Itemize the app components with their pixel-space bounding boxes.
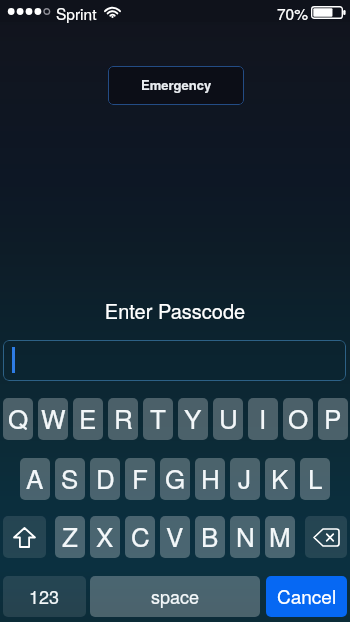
button[interactable]: Emergency (108, 66, 244, 105)
button[interactable]: K (265, 458, 295, 500)
staticText: Q (8, 399, 29, 436)
staticText: I (259, 399, 267, 436)
staticText: X (96, 517, 114, 554)
staticText: B (201, 517, 219, 554)
staticText: E (79, 399, 97, 436)
staticText: S (61, 459, 79, 496)
button[interactable]: S (55, 458, 85, 500)
staticText: V (166, 517, 184, 554)
staticText: 70% (277, 2, 309, 24)
staticText: U (219, 399, 238, 436)
staticText: R (114, 399, 133, 436)
staticText: A (26, 459, 44, 496)
staticText: N (236, 517, 255, 554)
button[interactable]: G (160, 458, 190, 500)
button[interactable]: J (230, 458, 260, 500)
staticText: K (271, 459, 289, 496)
staticText: Emergency (141, 75, 212, 94)
staticText: P (324, 399, 342, 436)
staticText: J (238, 459, 252, 496)
button[interactable]: Shift (3, 516, 46, 558)
button[interactable]: A (20, 458, 50, 500)
staticText: Z (62, 517, 78, 554)
staticText: Sprint (56, 2, 97, 24)
button[interactable] (3, 340, 346, 381)
staticText: O (288, 399, 309, 436)
button[interactable]: V (160, 516, 190, 558)
staticText: G (165, 459, 186, 496)
staticText: F (132, 459, 148, 496)
staticText: 123 (29, 583, 60, 609)
button[interactable]: L (300, 458, 330, 500)
staticText: L (308, 459, 323, 496)
staticText: Cancel (277, 582, 337, 609)
button[interactable]: space (90, 576, 260, 617)
button[interactable]: B (195, 516, 225, 558)
button[interactable]: R (108, 398, 138, 440)
button[interactable]: 123 (3, 576, 86, 617)
staticText: D (96, 459, 115, 496)
staticText: M (269, 517, 291, 554)
button[interactable]: U (213, 398, 243, 440)
button[interactable]: Cancel (266, 576, 347, 617)
button[interactable]: W (38, 398, 68, 440)
button[interactable]: N (230, 516, 260, 558)
button[interactable]: Y (178, 398, 208, 440)
staticText: C (131, 517, 150, 554)
staticText: Enter Passcode (0, 296, 350, 325)
staticText: H (201, 459, 220, 496)
button[interactable]: H (195, 458, 225, 500)
staticText: Y (184, 399, 202, 436)
button[interactable]: Z (55, 516, 85, 558)
button[interactable]: F (125, 458, 155, 500)
button[interactable]: T (143, 398, 173, 440)
button[interactable]: D (90, 458, 120, 500)
staticText: W (41, 399, 66, 436)
button[interactable]: O (283, 398, 313, 440)
staticText: space (151, 583, 200, 609)
button[interactable]: E (73, 398, 103, 440)
button[interactable]: P (318, 398, 348, 440)
button[interactable]: X (90, 516, 120, 558)
button[interactable]: Q (3, 398, 33, 440)
button[interactable]: I (248, 398, 278, 440)
staticText: T (150, 399, 166, 436)
button[interactable]: Backspace (305, 516, 347, 558)
button[interactable]: C (125, 516, 155, 558)
button[interactable]: M (265, 516, 295, 558)
